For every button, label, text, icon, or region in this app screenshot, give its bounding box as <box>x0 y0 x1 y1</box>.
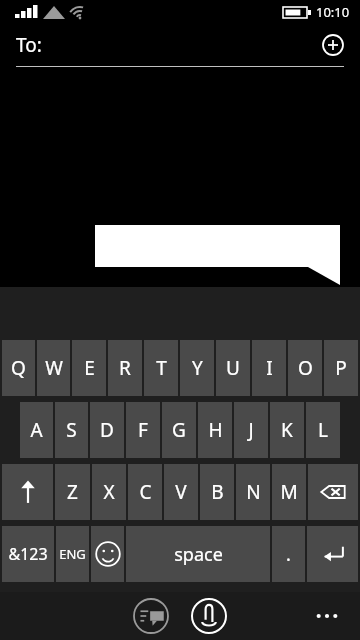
staticText: T <box>156 355 167 381</box>
staticText: To: <box>16 32 42 58</box>
staticText: E <box>84 355 95 381</box>
staticText: F <box>138 417 148 443</box>
staticText: W <box>45 355 63 381</box>
button[interactable]: space <box>126 526 270 582</box>
staticText: . <box>286 542 291 567</box>
staticText: J <box>248 417 254 443</box>
button[interactable]: Enter <box>307 526 358 582</box>
button[interactable]: H <box>198 402 232 458</box>
staticText: H <box>208 417 223 443</box>
button[interactable]: E <box>72 340 106 396</box>
staticText: O <box>298 355 313 381</box>
staticText: I <box>266 355 273 381</box>
button[interactable]: S <box>55 402 88 458</box>
button[interactable]: D <box>90 402 124 458</box>
staticText: U <box>226 355 240 381</box>
staticText: C <box>139 479 152 505</box>
button[interactable]: W <box>37 340 70 396</box>
button[interactable]: A <box>20 402 53 458</box>
staticText: R <box>119 355 131 381</box>
button[interactable]: T <box>144 340 178 396</box>
staticText: &123 <box>8 543 48 565</box>
button[interactable]: Add recipient <box>316 28 350 62</box>
button[interactable]: J <box>234 402 268 458</box>
staticText: S <box>66 417 77 443</box>
staticText: G <box>172 417 186 443</box>
button[interactable]: More options <box>308 597 346 635</box>
staticText: M <box>280 479 298 505</box>
staticText: P <box>335 355 347 381</box>
button[interactable]: Attach <box>187 594 231 638</box>
button[interactable]: P <box>324 340 358 396</box>
staticText: N <box>246 479 261 505</box>
staticText: X <box>103 479 115 505</box>
button[interactable]: &123 <box>2 526 54 582</box>
button[interactable]: L <box>306 402 340 458</box>
button[interactable]: O <box>288 340 322 396</box>
button[interactable]: Backspace <box>308 464 358 520</box>
button[interactable]: G <box>162 402 196 458</box>
button[interactable]: F <box>126 402 160 458</box>
button[interactable]: X <box>92 464 126 520</box>
staticText: V <box>175 479 187 505</box>
button[interactable]: N <box>236 464 270 520</box>
button[interactable]: C <box>128 464 162 520</box>
button[interactable]: Send message <box>129 594 173 638</box>
button[interactable]: ENG <box>56 526 89 582</box>
button[interactable]: Z <box>55 464 90 520</box>
staticText: Z <box>67 479 78 505</box>
staticText: D <box>100 417 114 443</box>
staticText: 10:10 <box>316 3 350 21</box>
staticText: K <box>281 417 293 443</box>
staticText: L <box>318 417 328 443</box>
button[interactable]: V <box>164 464 198 520</box>
button[interactable]: B <box>200 464 234 520</box>
staticText: ENG <box>59 545 86 563</box>
staticText: Q <box>11 355 26 381</box>
button[interactable]: . <box>272 526 305 582</box>
staticText: A <box>30 417 43 443</box>
button[interactable]: I <box>252 340 286 396</box>
button[interactable]: M <box>272 464 306 520</box>
button[interactable]: U <box>216 340 250 396</box>
button[interactable]: R <box>108 340 142 396</box>
staticText: B <box>211 479 224 505</box>
button[interactable]: Y <box>180 340 214 396</box>
staticText: Y <box>192 355 203 381</box>
button[interactable]: Shift <box>2 464 53 520</box>
button[interactable]: Emoji <box>91 526 124 582</box>
button[interactable]: Q <box>2 340 35 396</box>
staticText: space <box>174 542 223 567</box>
button[interactable]: K <box>270 402 304 458</box>
